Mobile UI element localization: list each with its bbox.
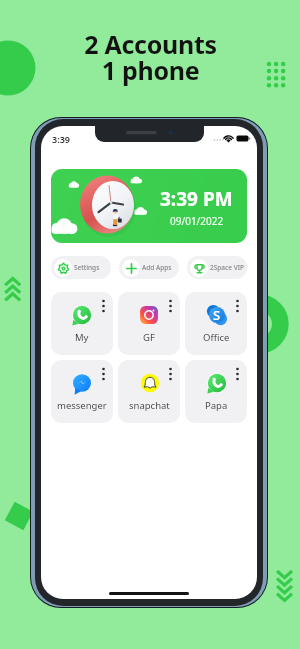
button[interactable]: Settings [51, 256, 111, 279]
staticText: 3:39 [52, 133, 70, 145]
button[interactable]: More options for messenger [102, 368, 105, 380]
button[interactable]: More options for Office [236, 300, 239, 312]
button[interactable]: Add Apps [119, 256, 179, 279]
staticText: Settings [74, 263, 100, 272]
button[interactable]: More options for snapchat [169, 368, 172, 380]
button[interactable]: Papa [185, 360, 247, 423]
staticText: 09/01/2022 [170, 214, 224, 228]
button[interactable]: snapchat [118, 360, 180, 423]
staticText: 2Space VIP [210, 263, 244, 272]
staticText: S [213, 306, 221, 324]
staticText: Office [203, 331, 230, 344]
staticText: Add Apps [142, 263, 172, 272]
button[interactable]: More options for Papa [236, 368, 239, 380]
staticText: My [75, 331, 89, 344]
staticText: Papa [205, 399, 228, 412]
staticText: 3:39 PM [160, 186, 233, 212]
button[interactable]: GF [118, 292, 180, 355]
button[interactable]: messenger [51, 360, 113, 423]
button[interactable]: S [185, 292, 247, 355]
button[interactable]: 2Space VIP [187, 256, 247, 279]
button[interactable]: More options for GF [169, 300, 172, 312]
button[interactable]: 3:39 PM [51, 169, 247, 243]
staticText: 2 Accounts 1 phone [84, 27, 217, 87]
staticText: messenger [57, 399, 107, 412]
button[interactable]: My [51, 292, 113, 355]
staticText: snapchat [129, 399, 170, 412]
button[interactable]: More options for My [102, 300, 105, 312]
staticText: GF [143, 331, 155, 344]
